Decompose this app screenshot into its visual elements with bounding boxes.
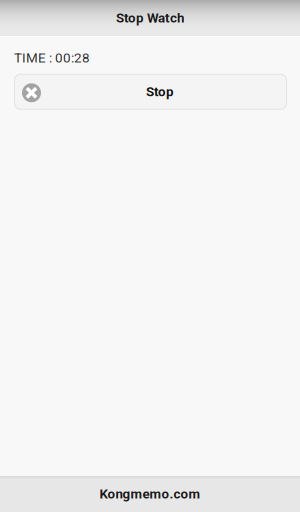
staticText: Stop [146,84,174,100]
button[interactable]: Stop [14,74,287,110]
staticText: TIME : 00:28 [14,50,90,66]
staticText: Kongmemo.com [99,486,200,502]
staticText: Stop Watch [116,10,184,26]
